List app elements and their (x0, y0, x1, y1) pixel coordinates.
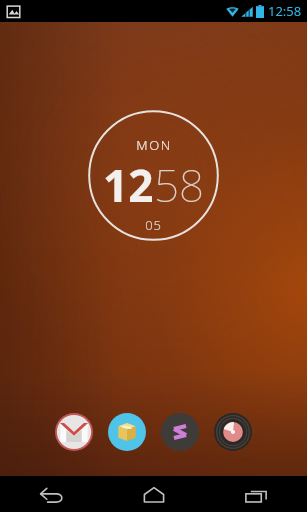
button[interactable]: Package (107, 412, 147, 452)
button[interactable]: Recent apps (205, 476, 307, 512)
button[interactable]: Music (213, 412, 253, 452)
button[interactable]: MON (88, 110, 219, 241)
staticText: MON (136, 136, 172, 154)
staticText: 12:58 (268, 2, 302, 20)
button[interactable]: Gmail (54, 412, 94, 452)
staticText: 58 (154, 155, 205, 215)
staticText: 05 (145, 216, 162, 234)
button[interactable]: Home (103, 476, 205, 512)
other: Photo notification (6, 4, 21, 19)
staticText: 12 (103, 155, 154, 215)
button[interactable]: Back (0, 476, 103, 512)
button[interactable]: Sketch (160, 412, 200, 452)
